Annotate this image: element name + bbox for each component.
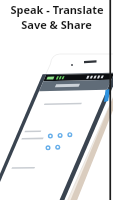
staticText: Save & Share <box>21 17 92 32</box>
staticText: Speak - Translate <box>10 2 104 17</box>
